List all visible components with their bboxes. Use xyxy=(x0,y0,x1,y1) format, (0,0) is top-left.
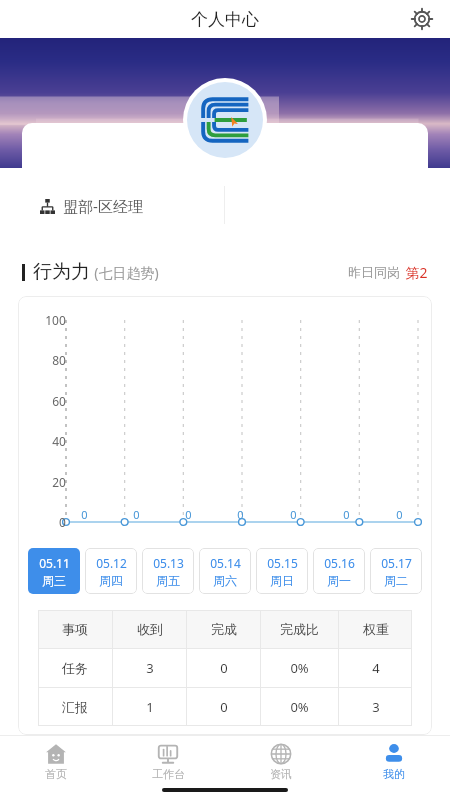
staticText: 20 xyxy=(52,474,66,490)
staticText: 周二 xyxy=(384,573,408,588)
staticText: 0% xyxy=(290,659,309,677)
staticText: 任务 xyxy=(62,660,88,676)
staticText: 收到 xyxy=(137,621,163,637)
staticText: 0 xyxy=(81,507,88,522)
button[interactable]: 05.14 xyxy=(199,548,251,594)
staticText: (七日趋势) xyxy=(94,263,159,282)
staticText: 权重 xyxy=(363,621,389,637)
button[interactable]: 05.17 xyxy=(370,548,422,594)
staticText: 我的 xyxy=(383,767,405,781)
staticText: 05.14 xyxy=(210,555,241,571)
staticText: 3 xyxy=(372,698,380,716)
staticText: 0 xyxy=(290,507,297,522)
staticText: 0 xyxy=(343,507,350,522)
button[interactable]: 工作台 xyxy=(112,736,224,788)
staticText: 05.17 xyxy=(381,555,412,571)
button[interactable]: 05.11 xyxy=(28,548,80,594)
staticText: 周三 xyxy=(42,573,66,588)
staticText: 0 xyxy=(133,507,140,522)
staticText: 汇报 xyxy=(62,699,88,715)
button[interactable]: 我的 xyxy=(337,736,450,788)
staticText: 周六 xyxy=(213,573,237,588)
staticText: 工作台 xyxy=(152,767,185,781)
staticText: 0% xyxy=(290,698,309,716)
staticText: 05.15 xyxy=(267,555,298,571)
staticText: 0 xyxy=(220,698,228,716)
staticText: 0 xyxy=(237,507,244,522)
staticText: 个人中心 xyxy=(191,9,259,30)
staticText: 行为力 xyxy=(33,260,90,284)
staticText: 0 xyxy=(59,514,66,530)
staticText: 100 xyxy=(45,312,66,328)
button[interactable]: 盟部-区经理 xyxy=(22,123,428,238)
staticText: 周日 xyxy=(270,573,294,588)
staticText: 周五 xyxy=(156,573,180,588)
staticText: 盟部-区经理 xyxy=(63,196,143,216)
staticText: 0 xyxy=(185,507,192,522)
staticText: 0 xyxy=(220,659,228,677)
button[interactable]: 05.12 xyxy=(85,548,137,594)
button[interactable]: Avatar xyxy=(183,78,267,162)
staticText: 05.16 xyxy=(324,555,355,571)
staticText: 第2 xyxy=(405,263,428,282)
staticText: 完成 xyxy=(211,621,237,637)
button[interactable]: 05.13 xyxy=(142,548,194,594)
staticText: 80 xyxy=(52,352,66,368)
staticText: 周四 xyxy=(99,573,123,588)
staticText: 4 xyxy=(372,659,380,677)
staticText: 60 xyxy=(52,393,66,409)
staticText: 40 xyxy=(52,433,66,449)
staticText: 资讯 xyxy=(270,767,292,781)
staticText: 完成比 xyxy=(280,621,319,637)
staticText: 昨日同岗 xyxy=(348,264,400,280)
staticText: 事项 xyxy=(62,621,88,637)
staticText: 05.13 xyxy=(153,555,184,571)
staticText: 首页 xyxy=(45,767,67,781)
staticText: 3 xyxy=(146,659,154,677)
button[interactable]: 资讯 xyxy=(224,736,337,788)
button[interactable]: Settings xyxy=(406,3,438,35)
button[interactable]: 05.15 xyxy=(256,548,308,594)
button[interactable]: 05.16 xyxy=(313,548,365,594)
staticText: 1 xyxy=(146,698,154,716)
staticText: 05.11 xyxy=(39,555,70,571)
staticText: 周一 xyxy=(327,573,351,588)
staticText: 0 xyxy=(396,507,403,522)
button[interactable]: 首页 xyxy=(0,736,112,788)
staticText: 05.12 xyxy=(96,555,127,571)
